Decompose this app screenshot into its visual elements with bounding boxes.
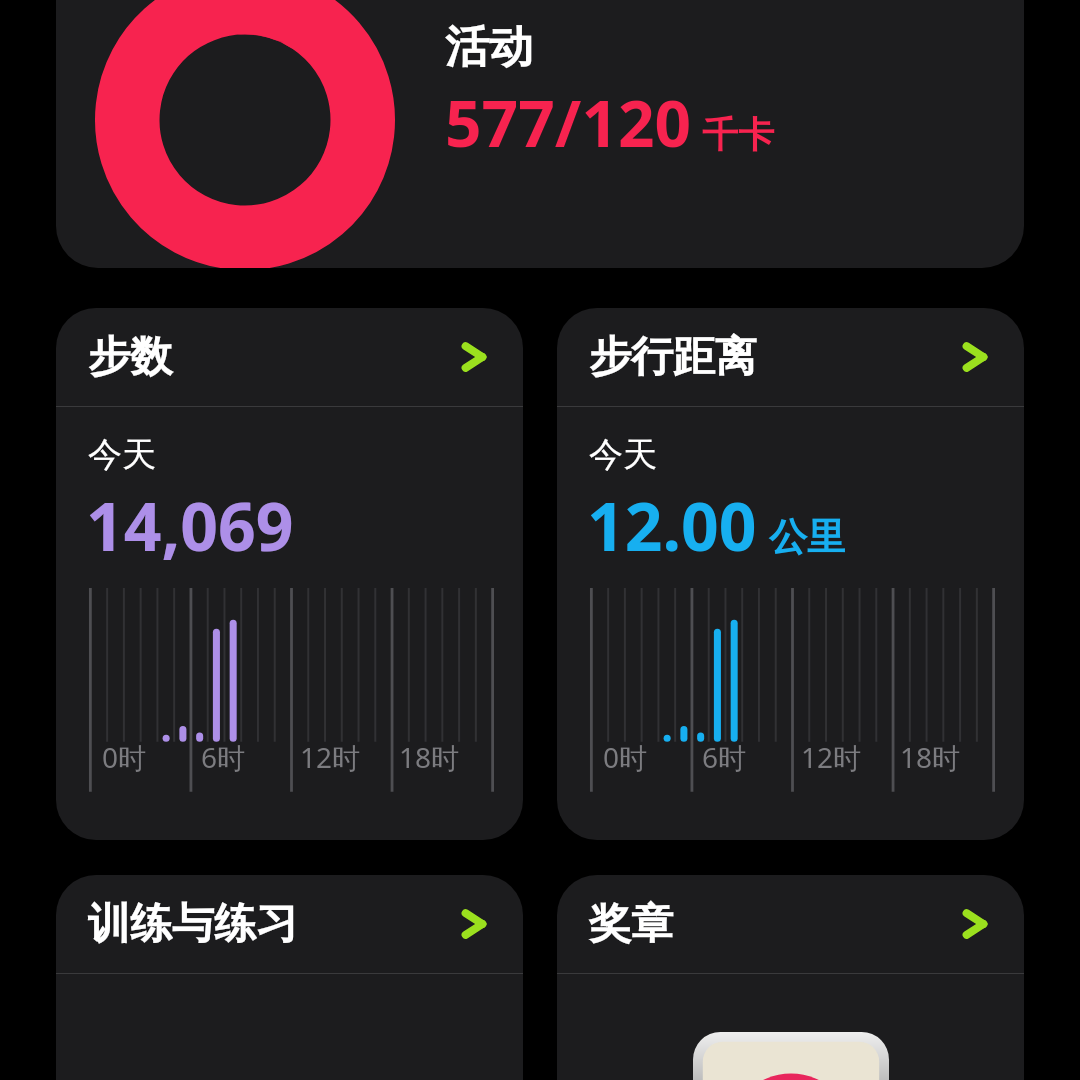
- staticText: 奖章: [589, 898, 673, 951]
- staticText: 0时: [603, 738, 1002, 776]
- button[interactable]: 步数: [56, 308, 523, 840]
- staticText: 18时: [900, 738, 1002, 776]
- staticText: 0时: [102, 738, 501, 776]
- button[interactable]: 训练与练习: [453, 903, 495, 945]
- button[interactable]: 奖章: [954, 903, 996, 945]
- staticText: 活动: [445, 20, 533, 75]
- staticText: 今天: [589, 433, 657, 476]
- staticText: 12时: [801, 738, 1002, 776]
- staticText: 14,069: [86, 480, 294, 570]
- button[interactable]: 步行距离: [954, 336, 996, 378]
- staticText: 步数: [88, 331, 172, 384]
- staticText: 千卡: [702, 112, 774, 157]
- staticText: 12时: [300, 738, 501, 776]
- button[interactable]: 活动: [56, 0, 1024, 268]
- staticText: 18时: [399, 738, 501, 776]
- staticText: 577/120: [445, 79, 692, 166]
- staticText: 公里: [769, 513, 845, 561]
- staticText: 步行距离: [589, 331, 757, 384]
- button[interactable]: 训练与练习: [56, 875, 523, 1080]
- staticText: 今天: [88, 433, 156, 476]
- staticText: 12.00: [587, 480, 757, 570]
- staticText: 6时: [702, 738, 1002, 776]
- staticText: 训练与练习: [88, 898, 298, 951]
- button[interactable]: 步数: [453, 336, 495, 378]
- button[interactable]: 奖章: [557, 875, 1024, 1080]
- button[interactable]: 步行距离: [557, 308, 1024, 840]
- staticText: 6时: [201, 738, 501, 776]
